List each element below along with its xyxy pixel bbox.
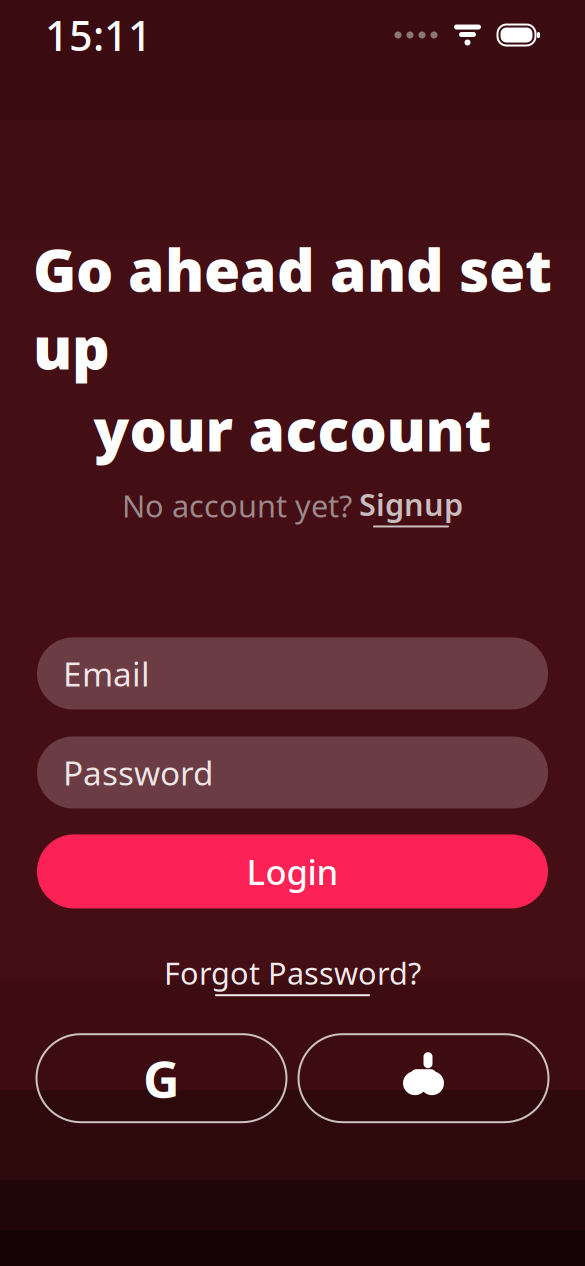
staticText: Password — [63, 750, 214, 795]
staticText: G — [143, 1044, 180, 1112]
button[interactable]: Sign in with Apple — [298, 1034, 548, 1122]
button[interactable]: Sign in with Google — [36, 1034, 286, 1122]
staticText: Forgot Password? — [164, 952, 421, 993]
button[interactable]: Login — [37, 834, 548, 908]
staticText: Login — [246, 848, 338, 894]
button[interactable]: Signup — [359, 484, 463, 527]
staticText: Signup — [359, 484, 463, 524]
staticText: Go ahead and set up — [33, 230, 552, 386]
staticText: Email — [63, 651, 150, 696]
staticText: your account — [93, 390, 491, 468]
staticText: No account yet? — [122, 485, 352, 526]
button[interactable]: Forgot Password? — [164, 952, 421, 996]
staticText: 15:11 — [45, 8, 152, 62]
